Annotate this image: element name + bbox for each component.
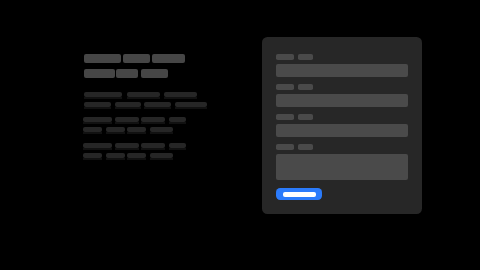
button[interactable]: Submit (276, 188, 322, 200)
button[interactable]: Message field (262, 37, 394, 63)
